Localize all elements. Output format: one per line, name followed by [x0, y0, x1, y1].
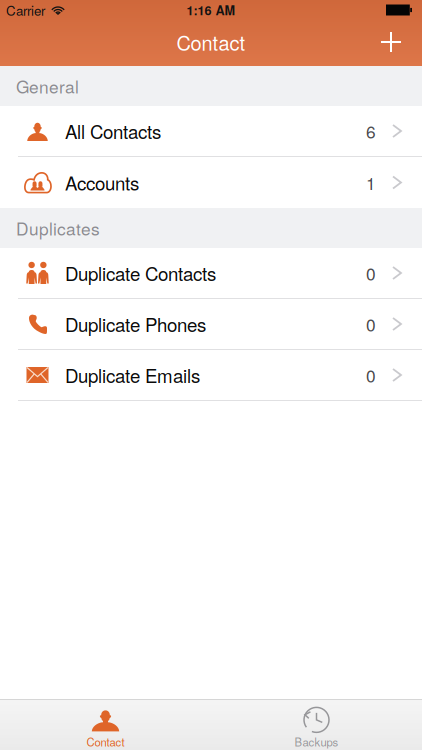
staticText: Duplicates: [16, 216, 100, 240]
staticText: Carrier: [6, 0, 45, 20]
staticText: Duplicate Emails: [65, 362, 200, 388]
staticText: Contact: [86, 733, 124, 750]
staticText: Backups: [294, 733, 338, 750]
button[interactable]: Backups: [211, 700, 422, 750]
staticText: 0: [366, 363, 376, 387]
staticText: All Contacts: [65, 118, 161, 144]
staticText: 0: [366, 261, 376, 285]
staticText: Accounts: [65, 169, 139, 196]
button[interactable]: All Contacts: [0, 106, 422, 157]
button[interactable]: Accounts: [0, 157, 422, 208]
staticText: 1: [366, 170, 376, 195]
staticText: 1:16 AM: [186, 1, 235, 19]
button[interactable]: Duplicate Phones: [0, 299, 422, 350]
button[interactable]: Duplicate Contacts: [0, 248, 422, 299]
button[interactable]: Contact: [0, 700, 211, 750]
staticText: 6: [366, 119, 376, 143]
staticText: Contact: [176, 28, 245, 56]
staticText: 0: [366, 312, 376, 336]
staticText: Duplicate Phones: [65, 311, 206, 337]
button[interactable]: Add contact: [367, 20, 422, 64]
staticText: General: [16, 74, 79, 98]
staticText: Duplicate Contacts: [65, 260, 216, 286]
button[interactable]: Duplicate Emails: [0, 350, 422, 401]
